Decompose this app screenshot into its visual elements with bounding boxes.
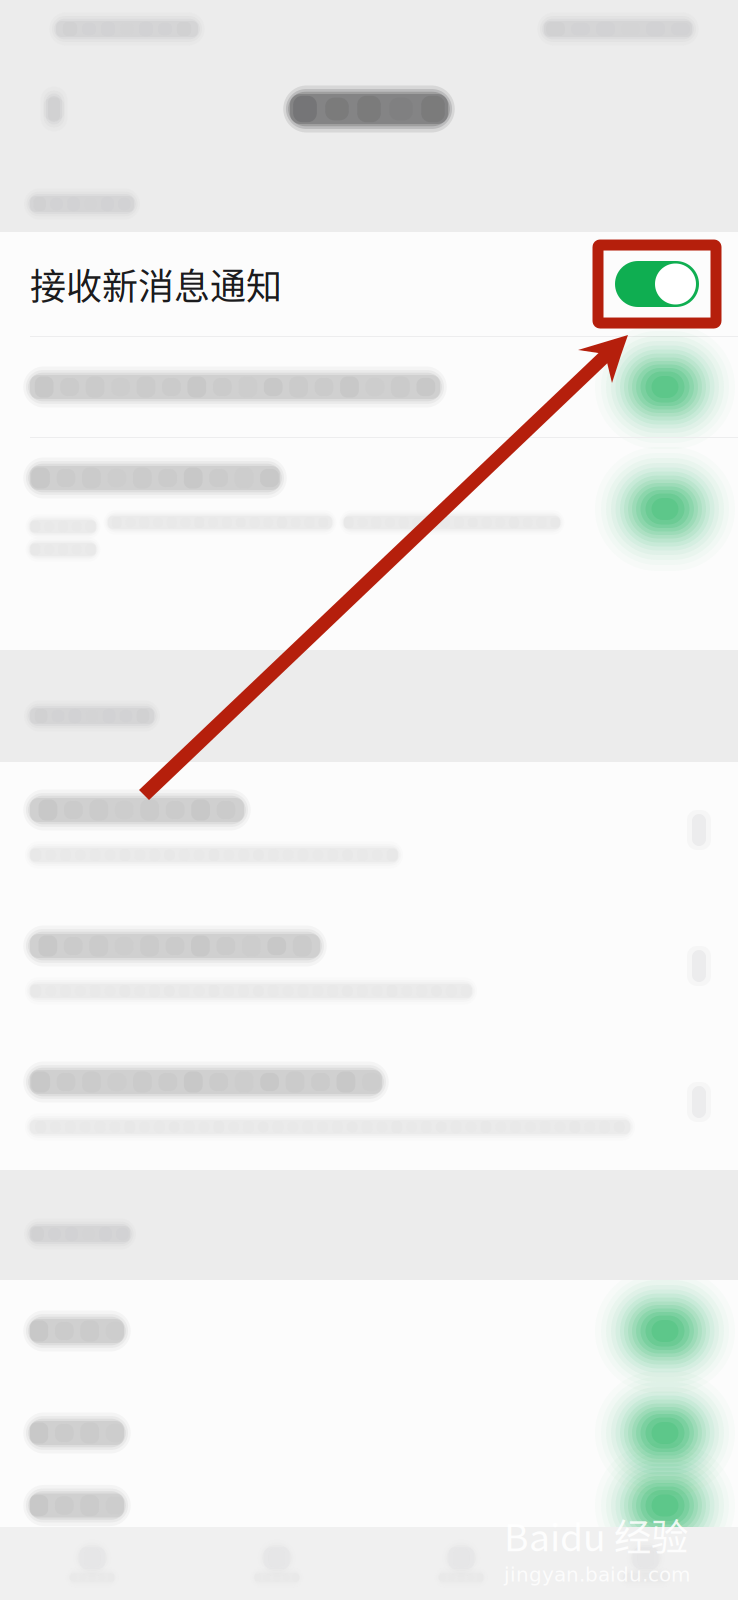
button[interactable]: Tab <box>553 1527 738 1600</box>
staticText: 接收新消息通知 <box>30 258 282 310</box>
button[interactable]: Setting <box>0 1034 738 1170</box>
button[interactable]: 接收新消息通知 <box>0 232 738 336</box>
button[interactable]: Setting <box>0 898 738 1034</box>
button[interactable]: Back <box>18 70 90 148</box>
button[interactable]: Tab <box>369 1527 553 1600</box>
staticText: Baidu 经验 <box>504 1508 688 1562</box>
staticText: jingyan.baidu.com <box>504 1563 690 1586</box>
button[interactable]: Setting <box>0 762 738 898</box>
